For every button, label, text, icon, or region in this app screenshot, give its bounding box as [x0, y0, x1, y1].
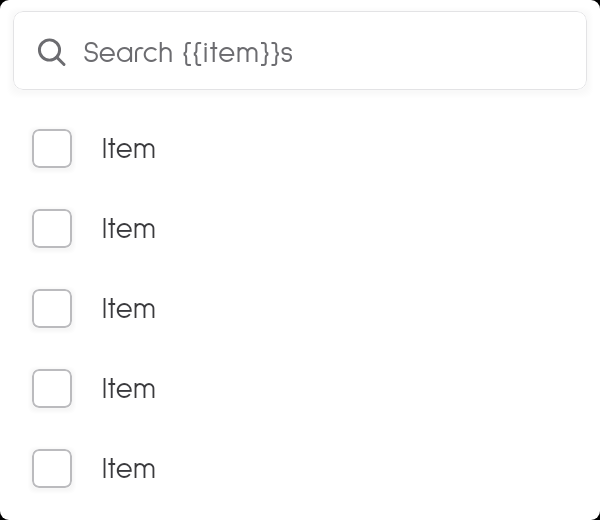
staticText: Item: [102, 454, 157, 484]
button[interactable]: Select item: [32, 449, 72, 488]
button[interactable]: Select item: [0, 428, 600, 508]
staticText: {{item}}s: [182, 38, 294, 68]
staticText: Item: [102, 214, 157, 244]
button[interactable]: Select item: [0, 268, 600, 348]
button[interactable]: Select item: [32, 289, 72, 328]
button[interactable]: Select item: [0, 348, 600, 428]
other: Search: [36, 34, 70, 68]
button[interactable]: Select item: [32, 369, 72, 408]
staticText: Item: [102, 294, 157, 324]
button[interactable]: Select item: [0, 188, 600, 268]
staticText: Item: [102, 374, 157, 404]
button[interactable]: Select item: [32, 129, 72, 168]
button[interactable]: Select item: [0, 108, 600, 188]
staticText: Item: [102, 134, 157, 164]
button[interactable]: Search {{item}}s: [13, 11, 587, 90]
button[interactable]: Select item: [32, 209, 72, 248]
staticText: Search: [83, 38, 174, 68]
